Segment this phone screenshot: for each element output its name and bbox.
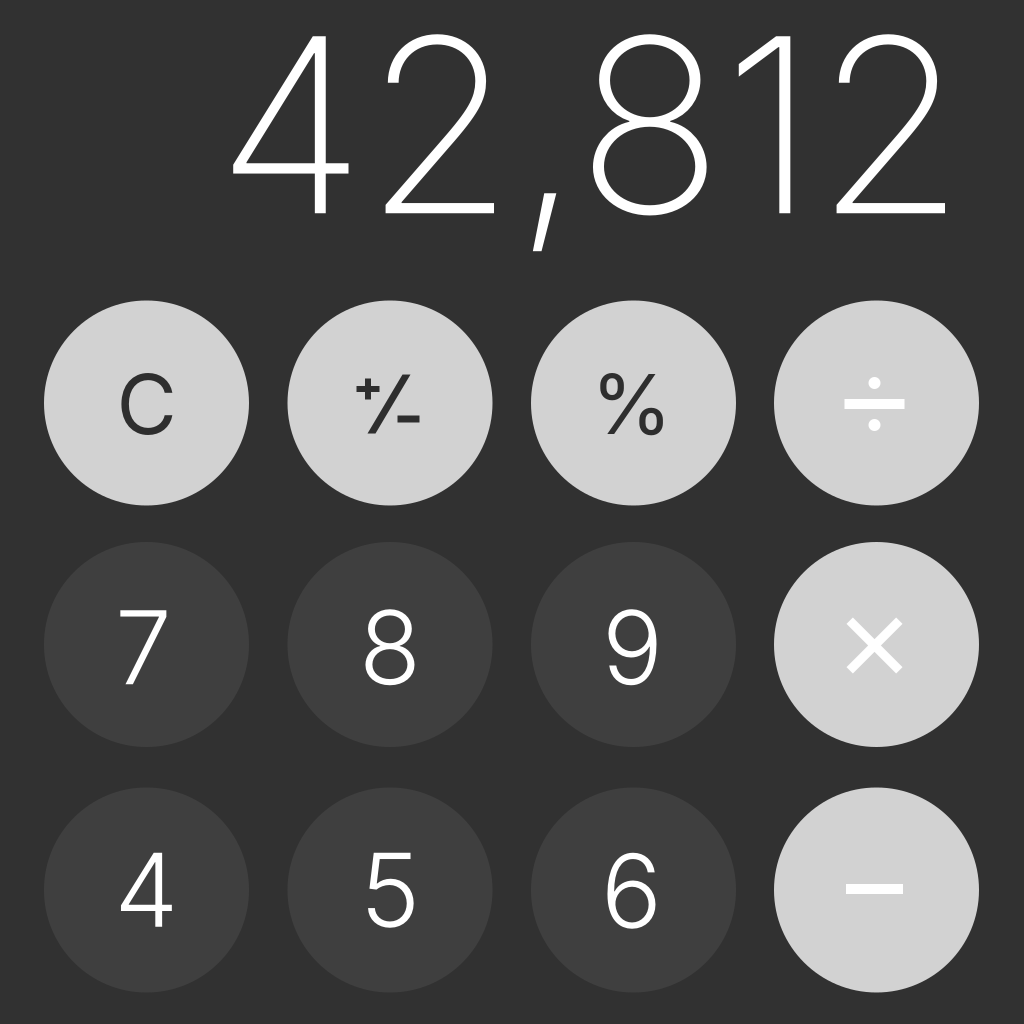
button[interactable]: Multiply (774, 542, 979, 747)
button[interactable]: % (531, 300, 736, 505)
button[interactable]: C (44, 300, 249, 505)
staticText: C (116, 354, 176, 454)
button[interactable]: 8 (287, 542, 492, 747)
staticText: 6 (601, 830, 662, 952)
button[interactable]: Result 42,812 (216, 0, 965, 272)
staticText: % (591, 354, 672, 454)
button[interactable]: 6 (531, 787, 736, 992)
button[interactable]: Plus or minus (287, 300, 492, 505)
staticText: 7 (115, 586, 172, 709)
staticText: 4 (114, 829, 178, 951)
button[interactable]: 4 (44, 787, 249, 992)
staticText: 9 (602, 586, 663, 709)
button[interactable]: Minus (774, 787, 979, 992)
staticText: 5 (360, 829, 420, 951)
staticText: 42,812 (216, 0, 965, 272)
button[interactable]: 5 (287, 787, 492, 992)
button[interactable]: 9 (531, 542, 736, 747)
button[interactable]: Divide (774, 300, 979, 505)
button[interactable]: 7 (44, 542, 249, 747)
staticText: 8 (359, 586, 421, 709)
